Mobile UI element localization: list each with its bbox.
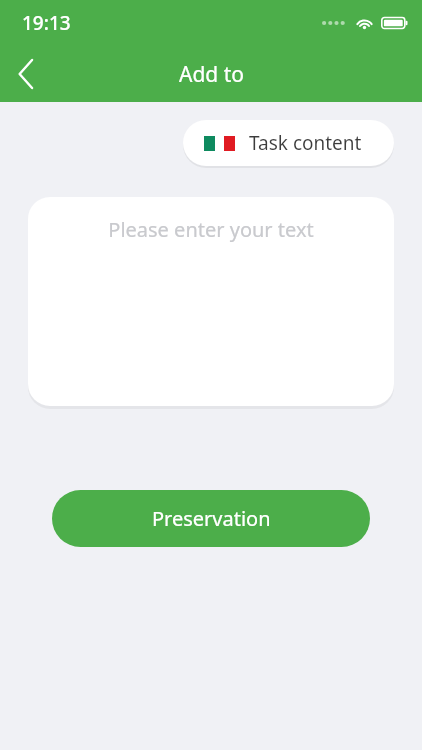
- button[interactable]: Preservation: [52, 490, 370, 547]
- button[interactable]: Task content: [183, 120, 394, 166]
- staticText: Task content: [249, 130, 362, 156]
- button[interactable]: Back: [0, 48, 52, 100]
- button[interactable]: Please enter your text: [28, 197, 394, 406]
- staticText: Add to: [179, 60, 244, 89]
- staticText: 19:13: [22, 10, 71, 36]
- staticText: Preservation: [152, 505, 271, 532]
- staticText: Please enter your text: [28, 216, 394, 243]
